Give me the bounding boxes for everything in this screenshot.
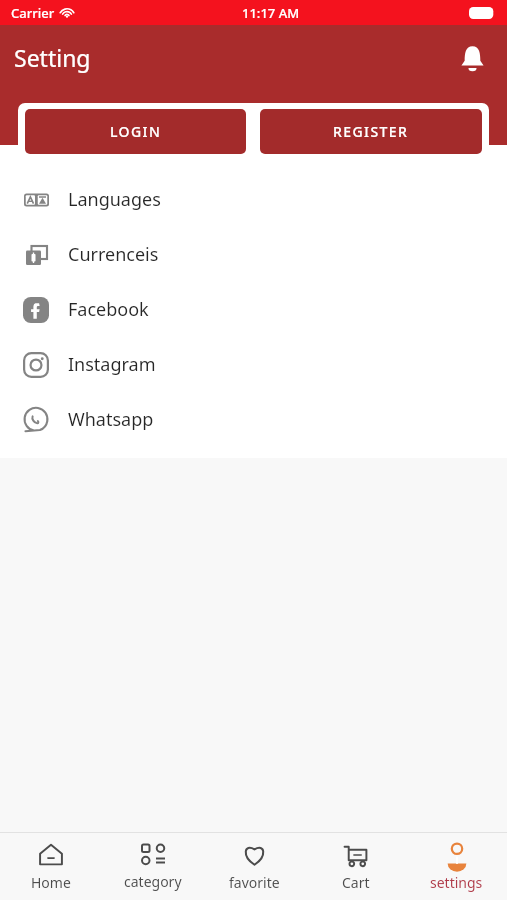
staticText: 11:17 AM bbox=[242, 4, 300, 22]
button[interactable]: LOGIN bbox=[25, 109, 246, 154]
staticText: REGISTER bbox=[333, 122, 409, 141]
button[interactable]: Whatsapp bbox=[0, 392, 507, 447]
staticText: Languages bbox=[68, 187, 161, 212]
button[interactable]: Instagram bbox=[0, 337, 507, 392]
button[interactable]: settings bbox=[406, 833, 507, 900]
button[interactable]: Home bbox=[0, 833, 102, 900]
staticText: favorite bbox=[229, 873, 280, 892]
staticText: settings bbox=[430, 873, 483, 892]
staticText: LOGIN bbox=[110, 122, 162, 141]
staticText: Instagram bbox=[68, 352, 156, 377]
staticText: category bbox=[124, 872, 182, 891]
staticText: Setting bbox=[14, 42, 91, 73]
button[interactable]: Languages bbox=[0, 172, 507, 227]
staticText: Cart bbox=[342, 873, 370, 892]
button[interactable]: favorite bbox=[204, 833, 305, 900]
button[interactable]: Currenceis bbox=[0, 227, 507, 282]
button[interactable]: REGISTER bbox=[260, 109, 482, 154]
staticText: Facebook bbox=[68, 297, 149, 322]
button[interactable]: Facebook bbox=[0, 282, 507, 337]
staticText: Carrier bbox=[11, 4, 55, 22]
staticText: Whatsapp bbox=[68, 407, 154, 432]
staticText: Home bbox=[31, 873, 71, 892]
button[interactable]: Cart bbox=[305, 833, 406, 900]
button[interactable]: Notifications bbox=[449, 35, 495, 81]
staticText: Currenceis bbox=[68, 242, 159, 267]
button[interactable]: category bbox=[102, 833, 204, 900]
